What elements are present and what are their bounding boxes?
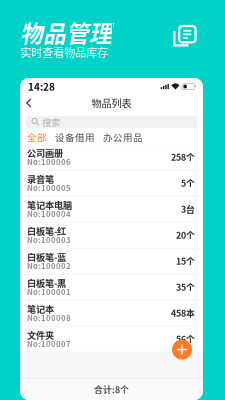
staticText: 3台 [181,203,195,215]
staticText: 录音笔 [27,172,54,185]
staticText: 公司画册 [27,146,63,159]
button[interactable]: Add item [172,145,203,360]
button[interactable]: Back [20,95,39,111]
staticText: 白板笔-蓝 [27,250,66,263]
staticText: 物品列表 [91,96,131,110]
button[interactable]: 白板笔-黑 [20,275,203,301]
button[interactable]: 文件夹 [20,327,203,353]
staticText: No:100003 [27,234,71,245]
staticText: 5个 [181,177,195,189]
staticText: No:100007 [27,338,71,349]
staticText: 物品管理 [20,16,112,48]
staticText: 15个 [176,255,195,267]
staticText: 实时查看物品库存 [20,44,108,60]
button[interactable]: 笔记本电脑 [20,197,203,223]
staticText: No:100006 [27,156,71,167]
staticText: 35个 [176,281,195,293]
staticText: 办公用品 [103,130,143,144]
staticText: 笔记本 [27,302,54,315]
staticText: 文件夹 [27,328,54,341]
staticText: 14:28 [28,79,55,94]
staticText: No:100008 [27,312,71,323]
staticText: 合计:8个 [94,383,129,396]
staticText: 458本 [171,307,195,319]
button[interactable]: 全部 [27,132,47,142]
staticText: 笔记本电脑 [27,198,72,211]
staticText: 全部 [27,130,47,144]
staticText: No:100002 [27,260,71,271]
staticText: 搜索 [42,115,60,128]
button[interactable]: 办公用品 [103,132,143,142]
button[interactable]: 搜索 [26,116,197,128]
staticText: 设备借用 [55,130,95,144]
staticText: No:100004 [27,208,71,219]
staticText: 白板笔-黑 [27,276,66,289]
button[interactable]: 公司画册 [20,145,203,171]
button[interactable]: 设备借用 [55,132,95,142]
staticText: 258个 [171,151,195,163]
staticText: 56个 [176,333,195,345]
staticText: No:100001 [27,286,71,297]
staticText: 20个 [176,229,195,241]
button[interactable]: 白板笔-蓝 [20,249,203,275]
button[interactable]: 录音笔 [20,171,203,197]
staticText: 白板笔-红 [27,224,66,237]
button[interactable]: 白板笔-红 [20,223,203,249]
staticText: No:100005 [27,182,71,193]
button[interactable]: 笔记本 [20,301,203,327]
